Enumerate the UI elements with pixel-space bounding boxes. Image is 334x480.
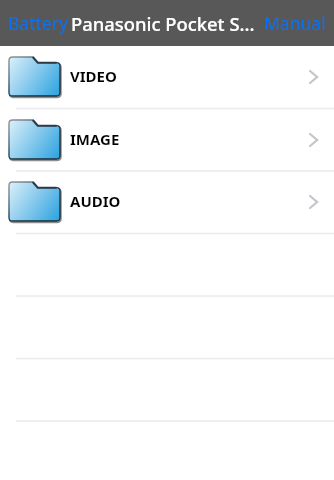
- staticText: Manual: [264, 11, 326, 35]
- other: Open: [309, 195, 318, 209]
- button[interactable]: IMAGE: [0, 108, 334, 171]
- button[interactable]: Manual: [257, 3, 334, 43]
- staticText: IMAGE: [70, 129, 120, 149]
- staticText: Battery: [8, 11, 68, 35]
- button[interactable]: AUDIO: [0, 170, 334, 233]
- staticText: AUDIO: [70, 191, 121, 211]
- button[interactable]: Battery: [0, 3, 75, 43]
- staticText: VIDEO: [70, 66, 117, 86]
- other: Open: [309, 70, 318, 84]
- staticText: Panasonic Pocket S...: [71, 11, 255, 36]
- other: Open: [309, 133, 318, 147]
- button[interactable]: VIDEO: [0, 45, 334, 108]
